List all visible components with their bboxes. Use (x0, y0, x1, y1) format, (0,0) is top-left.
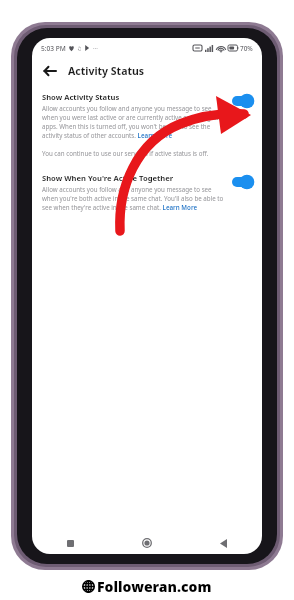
staticText: Followeran.com (97, 577, 212, 596)
button[interactable]: Toggle Show Activity Status (232, 93, 254, 109)
button[interactable]: Toggle Show When You're Active Together (232, 174, 254, 190)
button[interactable]: Home (108, 532, 185, 554)
staticText: Allow accounts you follow and anyone you… (42, 185, 228, 212)
staticText: ··· (93, 44, 98, 52)
button[interactable]: Back (185, 532, 262, 554)
button[interactable]: Show Activity Status (32, 92, 262, 140)
staticText: Show When You're Active Together (42, 173, 174, 183)
staticText: Allow accounts you follow and anyone you… (42, 104, 228, 140)
button[interactable]: Back (38, 60, 60, 82)
button[interactable]: Show When You're Active Together (32, 173, 262, 212)
staticText: Show Activity Status (42, 92, 120, 102)
staticText: You can continue to use our services if … (42, 149, 209, 157)
staticText: ♫ (77, 45, 82, 51)
staticText: Activity Status (68, 64, 145, 78)
staticText: 70% (240, 44, 253, 53)
button[interactable]: Recent apps (32, 532, 108, 554)
staticText: 5:03 PM (41, 44, 66, 53)
